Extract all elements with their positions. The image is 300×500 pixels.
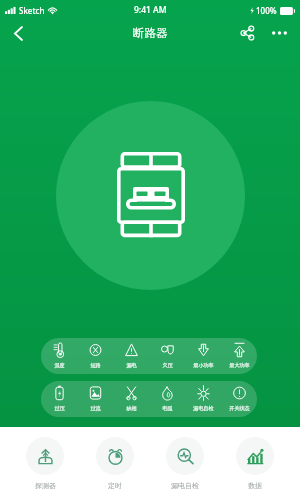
button[interactable]: 缺相 bbox=[113, 381, 149, 417]
staticText: 定时 bbox=[108, 481, 122, 490]
staticText: 最小功率 bbox=[193, 362, 214, 368]
button[interactable]: More options bbox=[266, 20, 292, 46]
staticText: 温度 bbox=[54, 362, 65, 368]
button[interactable]: 最小功率 bbox=[185, 338, 221, 374]
staticText: 电弧 bbox=[162, 405, 173, 411]
button[interactable]: 过流 bbox=[77, 381, 113, 417]
button[interactable]: 漏电 bbox=[113, 338, 149, 374]
button[interactable]: 温度 bbox=[41, 338, 77, 374]
button[interactable]: 电弧 bbox=[149, 381, 185, 417]
staticText: 100% bbox=[256, 5, 277, 16]
staticText: 缺相 bbox=[126, 405, 137, 411]
staticText: 漏电自检 bbox=[171, 481, 199, 490]
button[interactable]: 短路 bbox=[77, 338, 113, 374]
button[interactable]: 漏电自检 bbox=[185, 381, 221, 417]
button[interactable]: 开关状态 bbox=[221, 381, 257, 417]
staticText: 9:41 AM bbox=[134, 4, 167, 16]
staticText: 数据 bbox=[248, 481, 262, 490]
button[interactable]: 欠压 bbox=[149, 338, 185, 374]
staticText: 过压 bbox=[54, 405, 65, 411]
button[interactable]: 过压 bbox=[41, 381, 77, 417]
staticText: 探测器 bbox=[35, 481, 56, 490]
staticText: 短路 bbox=[90, 362, 101, 368]
button[interactable]: 定时 bbox=[80, 427, 150, 500]
button[interactable]: 探测器 bbox=[10, 427, 80, 500]
staticText: 欠压 bbox=[162, 362, 173, 368]
staticText: 断路器 bbox=[133, 26, 168, 40]
staticText: 开关状态 bbox=[229, 405, 250, 411]
staticText: 漏电 bbox=[126, 362, 137, 368]
button[interactable]: 数据 bbox=[220, 427, 290, 500]
staticText: 最大功率 bbox=[229, 362, 250, 368]
staticText: 过流 bbox=[90, 405, 101, 411]
button[interactable]: 最大功率 bbox=[221, 338, 257, 374]
button[interactable]: Share bbox=[234, 20, 260, 46]
staticText: Sketch bbox=[19, 5, 45, 16]
button[interactable]: Back bbox=[4, 20, 32, 46]
staticText: 漏电自检 bbox=[193, 405, 214, 411]
button[interactable]: 漏电自检 bbox=[150, 427, 220, 500]
